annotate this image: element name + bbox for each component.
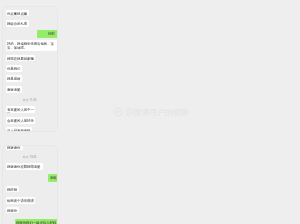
button[interactable]: 我是是啥 — [6, 75, 22, 82]
button[interactable]: 我想你 — [6, 207, 19, 213]
staticText: 马上回来就来啦 — [7, 129, 31, 132]
button[interactable]: 会老婆的人是好学 — [6, 117, 35, 124]
staticText: 我现在就要回家睡觉 — [7, 57, 34, 61]
staticText: 你点餐就点嘛 — [7, 12, 28, 16]
staticText: 给我发个语音呗呗 — [7, 199, 34, 203]
button[interactable]: 来啦 — [48, 174, 58, 182]
button[interactable]: 我谢谢你在陪我陪老婆 — [6, 163, 43, 170]
button[interactable]: 你是我们 — [6, 65, 22, 72]
button[interactable]: 谢谢老婆 — [6, 86, 22, 93]
staticText: @微博用户的昵称 — [126, 106, 190, 117]
staticText: 我组合还礼用 — [7, 22, 28, 26]
staticText: 我想你 — [7, 209, 18, 213]
staticText: 有老婆的人是不一样 — [7, 108, 34, 113]
button[interactable]: 有老婆的人是不一样 — [6, 106, 35, 113]
staticText: 我是是啥 — [7, 77, 21, 81]
staticText: 好吧 — [48, 32, 55, 36]
button[interactable]: 你点餐就点嘛 — [6, 10, 29, 16]
staticText: 我谢谢你在陪我陪老婆 — [7, 165, 41, 169]
button[interactable]: 好的，我也想学学弹吉他的，宝宝，加油吧。 — [6, 40, 57, 51]
button[interactable]: 我谢谢你啦 — [6, 145, 23, 150]
button[interactable]: 我好想 — [6, 186, 19, 192]
staticText: 我想你我们一起去玩儿好吗 — [16, 221, 57, 224]
staticText: 你是我们 — [7, 67, 21, 71]
staticText: 我好想 — [7, 188, 18, 192]
button[interactable]: 好吧 — [37, 30, 58, 38]
staticText: 谢谢老婆 — [7, 88, 21, 92]
staticText: 我谢谢你啦 — [7, 146, 22, 150]
staticText: 昨天 11:33 — [23, 98, 37, 102]
button[interactable]: 给我发个语音呗呗 — [6, 197, 35, 204]
button[interactable]: 我组合还礼用 — [6, 20, 29, 27]
staticText: 来啦 — [50, 176, 57, 180]
button[interactable]: 我现在就要回家睡觉 — [6, 55, 35, 61]
staticText: 昨天 13:04 — [23, 155, 37, 159]
staticText: 好的，我也想学学弹吉他的，宝宝，加油吧。 — [7, 42, 56, 50]
button[interactable]: 马上回来就来啦 — [6, 127, 32, 132]
button[interactable]: 我想你我们一起去玩儿好吗 — [15, 219, 58, 224]
staticText: 会老婆的人是好学 — [7, 119, 34, 123]
